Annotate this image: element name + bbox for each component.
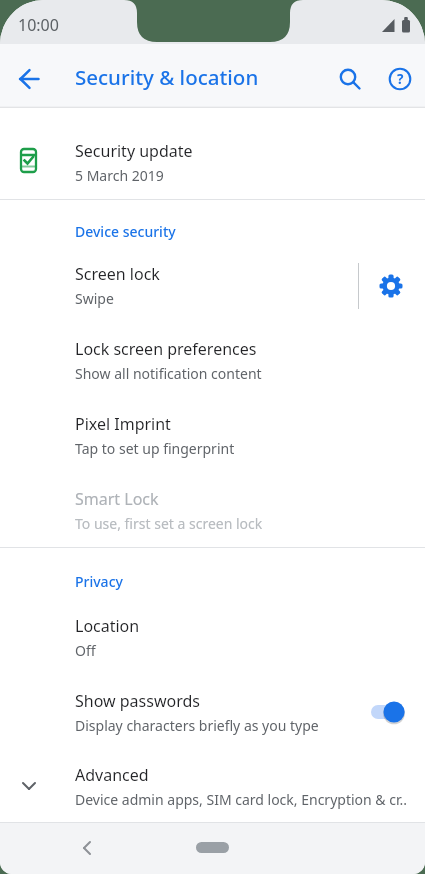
staticText: Security update — [75, 140, 193, 162]
staticText: Off — [75, 641, 96, 660]
button[interactable]: Show passwords — [0, 675, 425, 750]
button[interactable] — [330, 59, 370, 99]
button[interactable] — [196, 842, 229, 853]
staticText: 10:00 — [18, 14, 59, 36]
staticText: Security & location — [75, 63, 259, 91]
staticText: Lock screen preferences — [75, 338, 257, 360]
staticText: Show all notification content — [75, 364, 262, 383]
button[interactable] — [360, 692, 410, 732]
button[interactable] — [66, 828, 106, 868]
button[interactable] — [10, 56, 50, 96]
staticText: Tap to set up fingerprint — [75, 439, 235, 458]
staticText: 5 March 2019 — [75, 166, 164, 185]
button[interactable]: Security update — [0, 124, 425, 200]
staticText: Smart Lock — [75, 488, 159, 510]
staticText: Screen lock — [75, 263, 160, 285]
button[interactable]: Lock screen preferences — [0, 323, 425, 398]
button[interactable]: Location — [0, 600, 425, 675]
staticText: Show passwords — [75, 690, 200, 712]
staticText: Device admin apps, SIM card lock, Encryp… — [75, 790, 407, 809]
button[interactable]: Advanced — [0, 750, 425, 822]
staticText: Location — [75, 615, 140, 637]
button[interactable]: Screen lock — [0, 248, 425, 323]
staticText: Swipe — [75, 289, 114, 308]
staticText: Device security — [75, 222, 176, 241]
button[interactable]: Pixel Imprint — [0, 398, 425, 473]
button[interactable]: Smart Lock — [0, 473, 425, 548]
button[interactable]: ? — [380, 59, 420, 99]
staticText: ? — [397, 70, 404, 88]
staticText: Privacy — [75, 572, 123, 591]
button[interactable] — [368, 263, 414, 309]
staticText: Display characters briefly as you type — [75, 716, 319, 735]
staticText: To use, first set a screen lock — [75, 514, 263, 533]
staticText: Pixel Imprint — [75, 413, 171, 435]
staticText: Advanced — [75, 764, 149, 786]
